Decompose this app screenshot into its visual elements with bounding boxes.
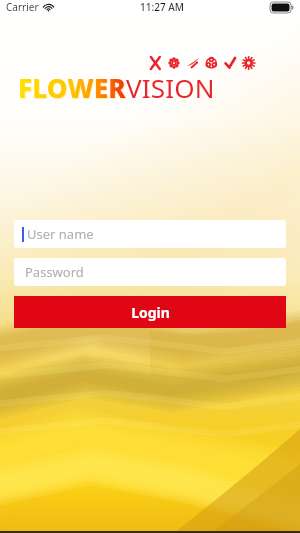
staticText: 11:27 AM: [140, 0, 184, 14]
staticText: FLOWER: [19, 71, 127, 106]
button[interactable]: Password: [14, 258, 286, 286]
staticText: User name: [27, 225, 94, 243]
staticText: FLOWER: [18, 70, 126, 105]
staticText: Password: [25, 263, 84, 281]
staticText: Carrier: [6, 0, 39, 14]
staticText: VISION: [126, 70, 215, 105]
button[interactable]: Login: [14, 296, 286, 328]
button[interactable]: User name: [14, 220, 286, 248]
staticText: Login: [131, 303, 170, 322]
